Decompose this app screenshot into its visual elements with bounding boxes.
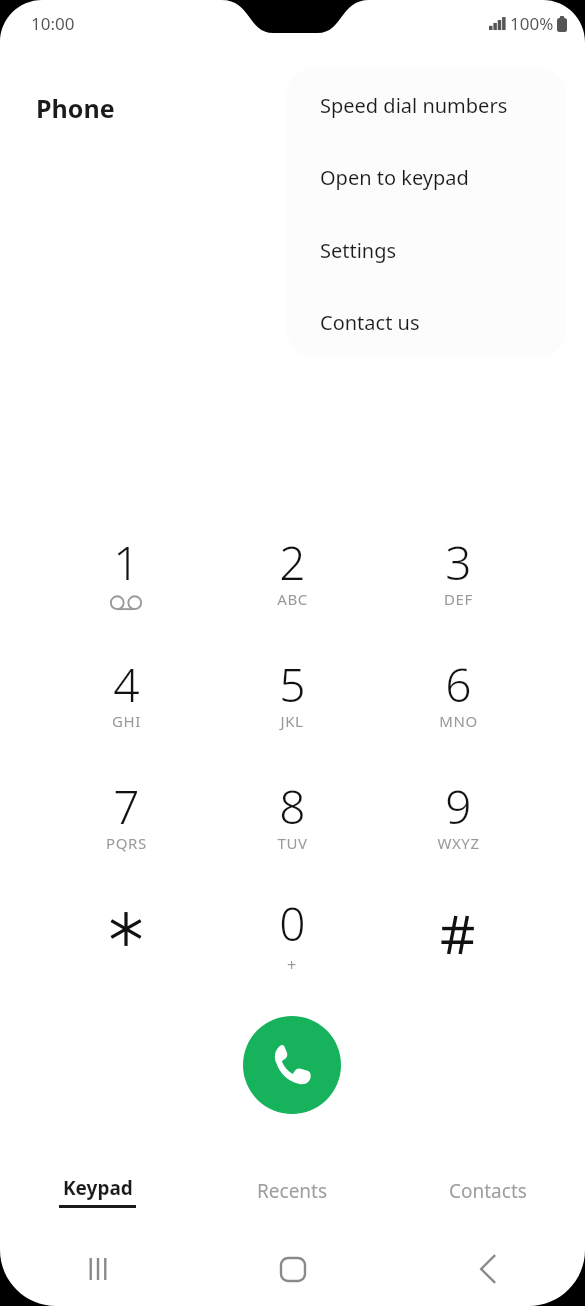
staticText: Keypad (63, 1175, 133, 1201)
staticText: 0 (279, 892, 306, 955)
staticText: ABC (277, 589, 308, 609)
staticText: 1 (113, 531, 140, 594)
staticText: Contact us (320, 309, 420, 336)
button[interactable]: Call (243, 1016, 341, 1114)
button[interactable]: Keypad (0, 1160, 195, 1222)
button[interactable]: Settings (287, 214, 566, 287)
staticText: GHI (112, 711, 141, 731)
staticText: 5 (279, 653, 306, 716)
staticText: PQRS (106, 833, 147, 853)
button[interactable]: Open to keypad (287, 141, 566, 214)
staticText: 8 (279, 775, 306, 838)
staticText: TUV (277, 833, 308, 853)
button[interactable]: 9 (383, 775, 533, 887)
button[interactable]: Speed dial numbers (287, 69, 566, 142)
button[interactable]: Back (390, 1240, 585, 1298)
button[interactable]: 8 (217, 775, 367, 887)
staticText: 9 (445, 775, 472, 838)
button[interactable]: Recent apps (0, 1240, 195, 1298)
staticText: Phone (36, 91, 115, 125)
staticText: Recents (257, 1178, 328, 1204)
button[interactable]: 3 (383, 531, 533, 643)
button[interactable]: Home (195, 1240, 390, 1298)
staticText: MNO (439, 711, 478, 731)
staticText: WXYZ (437, 833, 480, 853)
button[interactable]: 5 (217, 653, 367, 765)
button[interactable]: Contacts (390, 1160, 585, 1222)
staticText: DEF (444, 589, 473, 609)
staticText: 6 (445, 653, 472, 716)
button[interactable]: Contact us (287, 287, 566, 357)
button[interactable]: 6 (383, 653, 533, 765)
staticText: 2 (279, 531, 306, 594)
staticText: 4 (113, 653, 140, 716)
staticText: 10:00 (31, 12, 75, 35)
button[interactable]: 7 (51, 775, 201, 887)
staticText: Open to keypad (320, 164, 469, 191)
staticText: Speed dial numbers (320, 92, 508, 119)
button[interactable]: 2 (217, 531, 367, 643)
staticText: 7 (113, 775, 140, 838)
button[interactable]: 1 (51, 531, 201, 643)
button[interactable] (51, 892, 201, 1004)
button[interactable]: 0 (217, 892, 367, 1004)
staticText: Settings (320, 237, 397, 264)
button[interactable] (383, 892, 533, 1004)
staticText: JKL (280, 711, 304, 731)
staticText: + (287, 954, 297, 976)
staticText: 100% (510, 12, 554, 35)
button[interactable]: Recents (195, 1160, 390, 1222)
staticText: 3 (445, 531, 472, 594)
staticText: Contacts (449, 1178, 527, 1204)
button[interactable]: 4 (51, 653, 201, 765)
